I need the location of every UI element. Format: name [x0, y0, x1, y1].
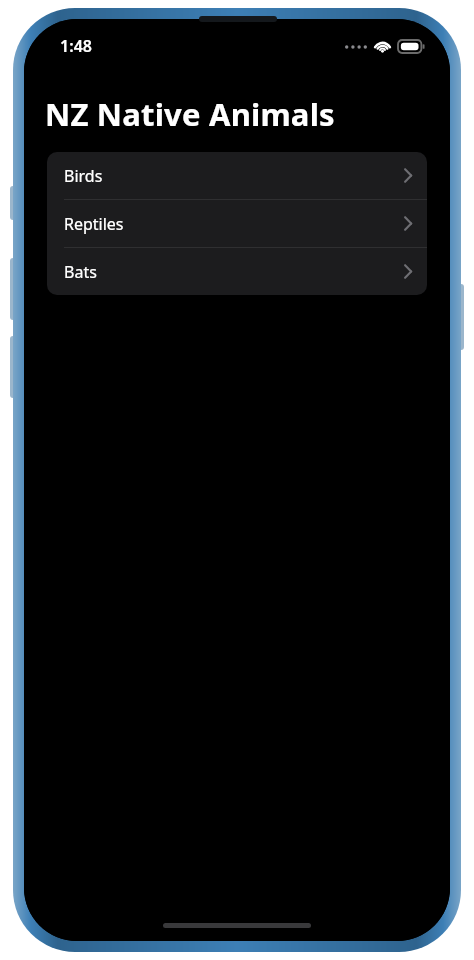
staticText: NZ Native Animals	[45, 93, 335, 135]
staticText: Birds	[64, 165, 103, 187]
other: Open Bats	[404, 264, 413, 279]
other: Open Birds	[404, 168, 413, 183]
button[interactable]: Bats	[47, 248, 427, 295]
staticText: 1:48	[60, 35, 92, 57]
staticText: Reptiles	[64, 213, 124, 235]
button[interactable]: Birds	[47, 152, 427, 199]
button[interactable]: Reptiles	[47, 200, 427, 247]
other: Open Reptiles	[404, 216, 413, 231]
staticText: Bats	[64, 261, 97, 283]
